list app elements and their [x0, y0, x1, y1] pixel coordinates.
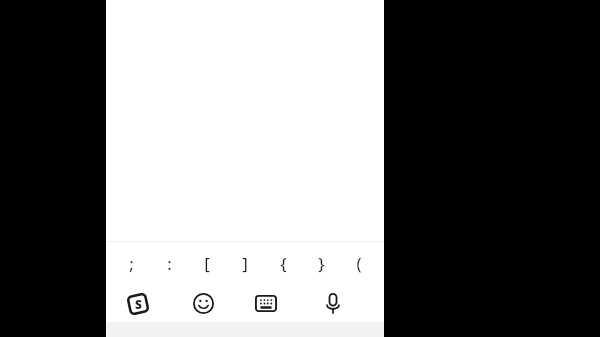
button[interactable]: Emoji [184, 285, 222, 322]
button[interactable]: Voice input [314, 285, 352, 322]
button[interactable]: ( [342, 242, 376, 285]
staticText: ( [356, 252, 362, 275]
button[interactable]: : [152, 242, 186, 285]
staticText: ; [129, 252, 134, 275]
button[interactable]: [ [190, 242, 224, 285]
staticText: { [280, 252, 287, 275]
staticText: S [135, 296, 142, 312]
button[interactable]: Keyboard settings [119, 285, 157, 322]
button[interactable]: ; [114, 242, 148, 285]
staticText: [ [204, 252, 210, 275]
button[interactable]: { [266, 242, 300, 285]
staticText: : [167, 252, 172, 275]
staticText: ] [242, 252, 248, 275]
button[interactable]: ] [228, 242, 262, 285]
button[interactable]: Switch keyboard [247, 285, 285, 322]
button[interactable]: } [304, 242, 338, 285]
staticText: } [318, 252, 325, 275]
